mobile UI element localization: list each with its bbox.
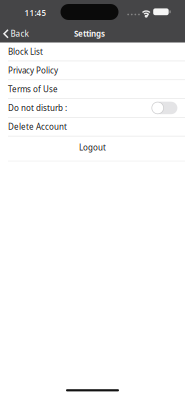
button[interactable]: Block List (0, 42, 185, 61)
button[interactable]: Privacy Policy (0, 61, 185, 80)
staticText: Delete Account (8, 121, 67, 132)
staticText: 11:45 (24, 7, 46, 18)
button[interactable]: Terms of Use (0, 80, 185, 99)
staticText: Settings (74, 28, 105, 39)
staticText: Do not disturb : (8, 103, 67, 113)
staticText: Terms of Use (8, 84, 58, 94)
button[interactable]: Back (0, 27, 28, 38)
staticText: Block List (8, 46, 43, 57)
button[interactable]: Do not disturb (154, 102, 177, 114)
staticText: Privacy Policy (8, 65, 58, 76)
staticText: Back (10, 28, 28, 39)
button[interactable]: Delete Account (0, 118, 185, 136)
button[interactable]: Logout (0, 136, 185, 159)
staticText: Logout (79, 142, 106, 153)
